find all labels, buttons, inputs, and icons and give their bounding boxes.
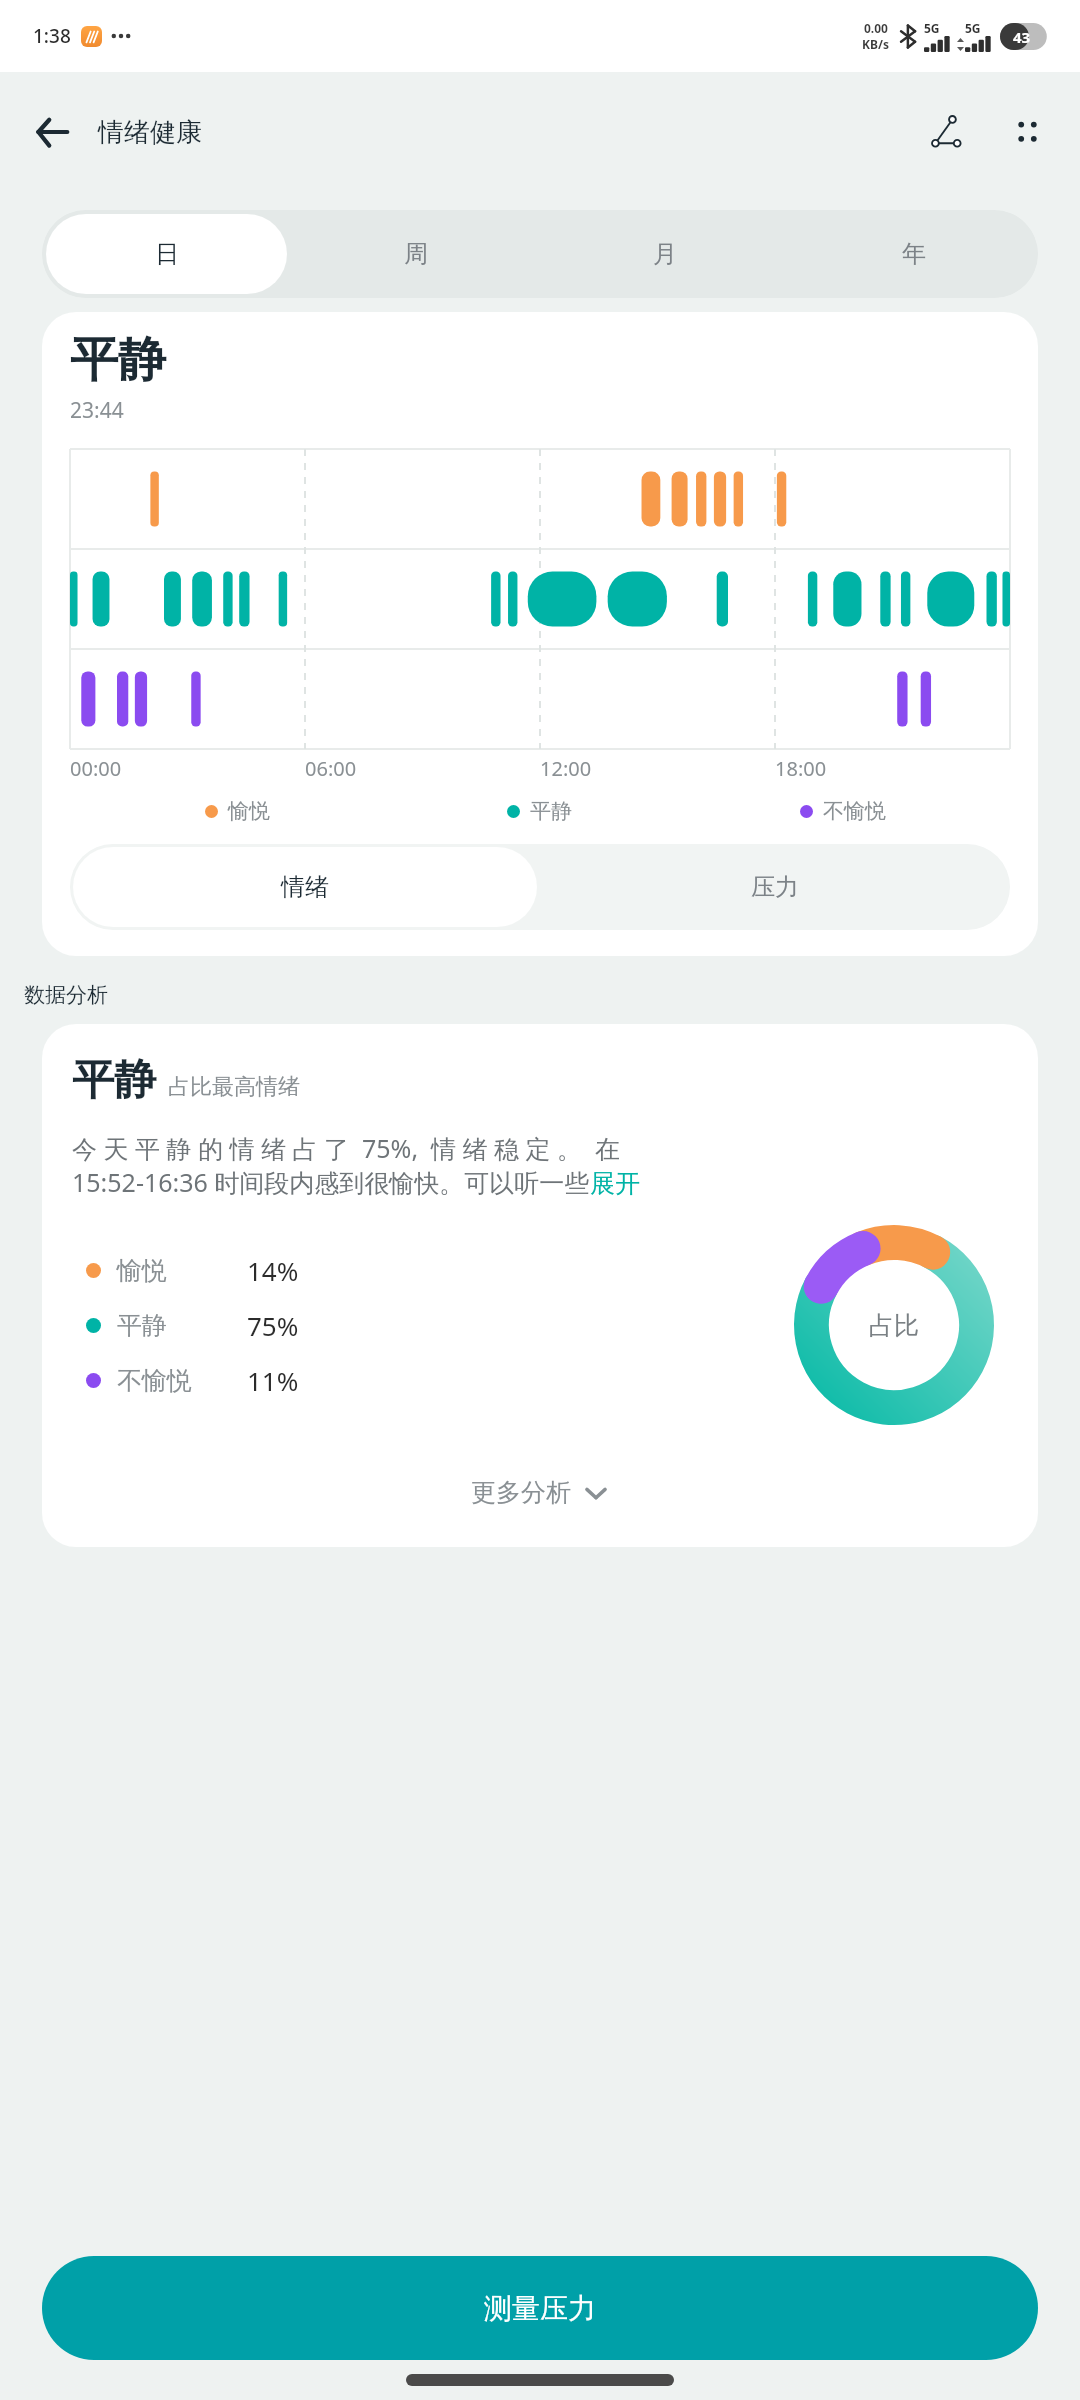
staticText: 更多分析 bbox=[471, 1477, 571, 1508]
staticText: 年 bbox=[902, 239, 926, 269]
staticText: 数据分析 bbox=[24, 982, 108, 1008]
button[interactable]: 日 bbox=[46, 214, 287, 294]
staticText: 月 bbox=[653, 239, 677, 269]
button[interactable]: Back bbox=[22, 102, 82, 162]
staticText: 测量压力 bbox=[484, 2291, 596, 2326]
staticText: 平静 bbox=[70, 330, 166, 390]
button[interactable]: 更多分析 bbox=[72, 1455, 1008, 1529]
staticText: 平静 bbox=[117, 1310, 167, 1341]
staticText: 情绪 bbox=[281, 872, 329, 902]
staticText: 5G bbox=[924, 20, 940, 36]
staticText: 15:52-16:36 时间段内感到很愉快。可以听一些 bbox=[72, 1165, 590, 1199]
staticText: 0.00 bbox=[864, 20, 888, 36]
staticText: 5G bbox=[965, 20, 981, 36]
staticText: 压力 bbox=[751, 872, 799, 902]
button[interactable]: More options bbox=[996, 101, 1058, 163]
staticText: 愉悦 bbox=[228, 798, 270, 824]
staticText: 12:00 bbox=[540, 755, 592, 782]
staticText: 今 天 平 静 的 情 绪 占 了 75%, 情 绪 稳 定 。 在 bbox=[72, 1131, 621, 1165]
staticText: 75% bbox=[247, 1308, 299, 1343]
button[interactable]: 周 bbox=[295, 214, 536, 294]
staticText: 11% bbox=[247, 1363, 299, 1398]
staticText: 平静 bbox=[72, 1054, 156, 1107]
staticText: 23:44 bbox=[70, 396, 124, 425]
staticText: 占比最高情绪 bbox=[168, 1073, 300, 1101]
staticText: 不愉悦 bbox=[117, 1365, 192, 1396]
staticText: 愉悦 bbox=[117, 1255, 167, 1286]
staticText: 1:38 bbox=[33, 23, 71, 49]
staticText: 43 bbox=[1013, 27, 1031, 47]
staticText: 平静 bbox=[530, 798, 572, 824]
staticText: 不愉悦 bbox=[823, 798, 886, 824]
staticText: 00:00 bbox=[70, 755, 122, 782]
staticText: 14% bbox=[247, 1253, 299, 1288]
button[interactable]: 月 bbox=[544, 214, 785, 294]
button[interactable]: Share bbox=[916, 101, 978, 163]
button[interactable]: 压力 bbox=[540, 844, 1010, 930]
staticText: 18:00 bbox=[775, 755, 827, 782]
button[interactable]: 测量压力 bbox=[42, 2256, 1038, 2360]
staticText: KB/s bbox=[862, 36, 889, 52]
button[interactable]: 情绪 bbox=[73, 847, 537, 927]
staticText: 占比 bbox=[869, 1310, 919, 1341]
button[interactable]: 展开 bbox=[590, 1168, 640, 1199]
staticText: 情绪健康 bbox=[98, 116, 202, 149]
staticText: 周 bbox=[404, 239, 428, 269]
staticText: 06:00 bbox=[305, 755, 357, 782]
button[interactable]: 年 bbox=[793, 214, 1034, 294]
staticText: 日 bbox=[155, 239, 179, 269]
